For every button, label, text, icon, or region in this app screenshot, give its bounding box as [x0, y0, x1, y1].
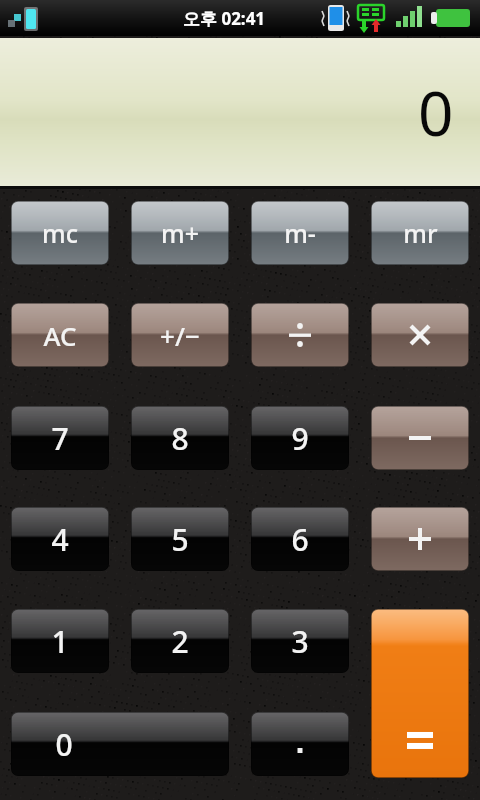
- button[interactable]: 0: [0, 38, 480, 186]
- button[interactable]: 8: [131, 406, 229, 470]
- button[interactable]: 4: [11, 507, 109, 571]
- staticText: m+: [161, 216, 199, 250]
- button[interactable]: Minus: [371, 406, 469, 470]
- button[interactable]: +/−: [131, 303, 229, 367]
- button[interactable]: 3: [251, 609, 349, 673]
- staticText: +/−: [160, 318, 200, 353]
- button[interactable]: 0: [11, 712, 229, 776]
- staticText: 0: [418, 70, 454, 154]
- button[interactable]: 7: [11, 406, 109, 470]
- button[interactable]: 2: [131, 609, 229, 673]
- staticText: 4: [51, 519, 69, 560]
- button[interactable]: mr: [371, 201, 469, 265]
- staticText: 6: [291, 519, 309, 560]
- staticText: 8: [171, 418, 189, 459]
- button[interactable]: 9: [251, 406, 349, 470]
- staticText: 7: [51, 418, 69, 459]
- staticText: 9: [291, 418, 309, 459]
- button[interactable]: Equals: [371, 609, 469, 778]
- button[interactable]: 5: [131, 507, 229, 571]
- button[interactable]: Plus: [371, 507, 469, 571]
- staticText: 오후 02:41: [183, 7, 266, 30]
- button[interactable]: Divide: [251, 303, 349, 367]
- staticText: 3: [291, 621, 309, 662]
- button[interactable]: 1: [11, 609, 109, 673]
- staticText: 2: [171, 621, 189, 662]
- button[interactable]: Multiply: [371, 303, 469, 367]
- button[interactable]: AC: [11, 303, 109, 367]
- button[interactable]: m+: [131, 201, 229, 265]
- staticText: 1: [51, 621, 69, 662]
- button[interactable]: m-: [251, 201, 349, 265]
- button[interactable]: 6: [251, 507, 349, 571]
- staticText: mc: [42, 216, 78, 250]
- staticText: 5: [171, 519, 189, 560]
- button[interactable]: Decimal point: [251, 712, 349, 776]
- staticText: AC: [43, 318, 77, 353]
- staticText: 0: [55, 724, 73, 765]
- staticText: m-: [284, 216, 316, 250]
- staticText: mr: [403, 216, 438, 250]
- button[interactable]: mc: [11, 201, 109, 265]
